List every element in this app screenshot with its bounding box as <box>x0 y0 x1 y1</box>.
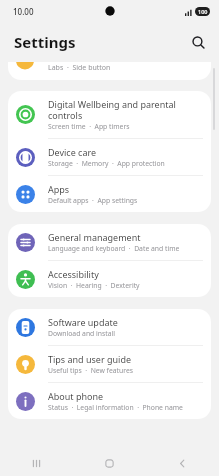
staticText: Accessibility <box>48 268 99 280</box>
staticText: 10.00 <box>13 6 34 17</box>
button[interactable]: Search <box>185 29 211 55</box>
staticText: Device care <box>48 146 97 158</box>
staticText: 100 <box>198 8 208 15</box>
button[interactable]: Software update <box>8 309 211 345</box>
staticText: Settings <box>14 32 76 52</box>
staticText: Download and install <box>48 329 116 338</box>
button[interactable]: Recents <box>0 450 73 476</box>
button[interactable]: Device care <box>8 139 211 175</box>
staticText: Language and keyboard · Date and time <box>48 244 180 253</box>
button[interactable]: Apps <box>8 176 211 212</box>
staticText: Default apps · App settings <box>48 196 138 205</box>
staticText: Labs · Side button <box>48 63 111 73</box>
staticText: Status · Legal information · Phone name <box>48 403 183 412</box>
staticText: Vision · Hearing · Dexterity <box>48 281 140 290</box>
button[interactable]: About phone <box>8 383 211 419</box>
staticText: Apps <box>48 183 70 195</box>
button[interactable]: General management <box>8 224 211 260</box>
staticText: Tips and user guide <box>48 353 132 365</box>
button[interactable]: Back <box>146 450 219 476</box>
staticText: Storage · Memory · App protection <box>48 159 165 168</box>
staticText: Digital Wellbeing and parental controls <box>48 98 176 121</box>
staticText: Software update <box>48 316 118 328</box>
staticText: About phone <box>48 390 104 402</box>
button[interactable]: Tips and user guide <box>8 346 211 382</box>
button[interactable]: Digital Wellbeing and parental controls <box>8 91 211 138</box>
button[interactable]: Accessibility <box>8 261 211 297</box>
button[interactable]: Labs · Side button <box>8 62 211 80</box>
button[interactable]: Home <box>73 450 146 476</box>
staticText: Screen time · App timers <box>48 122 130 131</box>
staticText: Useful tips · New features <box>48 366 134 375</box>
staticText: General management <box>48 231 141 243</box>
